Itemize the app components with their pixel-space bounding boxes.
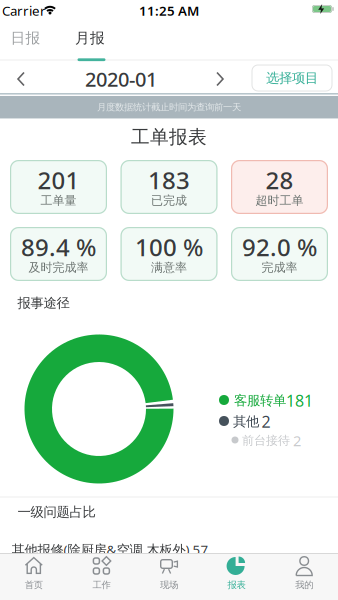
button[interactable]: Next month xyxy=(205,64,235,94)
staticText: 工单报表 xyxy=(131,125,207,148)
staticText: 月度数据统计截止时间为查询前一天 xyxy=(97,101,241,113)
staticText: 完成率 xyxy=(261,260,297,275)
staticText: 92.0 % xyxy=(242,231,317,263)
staticText: 一级问题占比 xyxy=(17,504,95,520)
staticText: 月报 xyxy=(75,29,105,47)
staticText: 28 xyxy=(265,164,293,196)
staticText: 2020-01 xyxy=(85,66,157,92)
button[interactable]: 现场 xyxy=(135,553,202,599)
button[interactable]: 月报 xyxy=(68,20,112,56)
button[interactable]: 选择项目 xyxy=(251,64,332,91)
staticText: 100 % xyxy=(135,231,203,263)
staticText: 现场 xyxy=(160,579,178,591)
staticText: 11:25 AM xyxy=(139,2,199,19)
staticText: 其他报修(除厨房&空调,木板外) 57 xyxy=(11,541,208,558)
staticText: 201 xyxy=(37,164,79,196)
staticText: Carrier xyxy=(2,2,46,19)
staticText: 工作 xyxy=(92,579,110,591)
staticText: 89.4 % xyxy=(21,231,96,263)
staticText: 工单量 xyxy=(40,193,76,208)
staticText: 选择项目 xyxy=(266,70,318,86)
staticText: 及时完成率 xyxy=(28,260,88,275)
staticText: 其他 xyxy=(233,413,259,430)
staticText: 181 xyxy=(286,390,313,411)
button[interactable]: 报表 xyxy=(203,553,270,599)
staticText: 2 xyxy=(293,431,301,450)
staticText: 首页 xyxy=(25,579,43,591)
staticText: 183 xyxy=(148,164,190,196)
staticText: 日报 xyxy=(10,29,40,47)
button[interactable]: 工作 xyxy=(68,553,135,599)
staticText: 超时工单 xyxy=(255,193,303,208)
staticText: 满意率 xyxy=(151,260,187,275)
button[interactable]: 日报 xyxy=(3,20,47,56)
staticText: 前台接待 xyxy=(242,433,290,448)
staticText: 2 xyxy=(261,411,270,432)
button[interactable]: 首页 xyxy=(0,553,67,599)
staticText: 报事途径 xyxy=(17,295,69,311)
button[interactable]: 我的 xyxy=(271,553,338,599)
staticText: 我的 xyxy=(295,579,313,591)
staticText: 报表 xyxy=(228,579,246,591)
staticText: 客服转单 xyxy=(234,392,286,409)
button[interactable]: Previous month xyxy=(6,64,36,94)
staticText: 已完成 xyxy=(151,193,187,208)
